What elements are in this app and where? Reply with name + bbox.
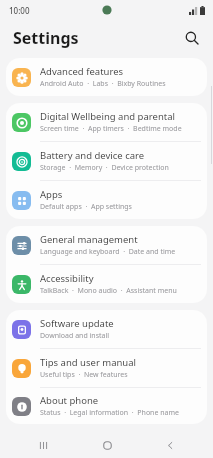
staticText: Useful tips · New features bbox=[40, 370, 128, 380]
staticText: General management bbox=[40, 233, 138, 246]
staticText: Settings bbox=[13, 27, 79, 49]
staticText: Advanced features bbox=[40, 65, 124, 78]
button[interactable]: Accessibility bbox=[6, 265, 207, 303]
staticText: Accessibility bbox=[40, 272, 94, 285]
staticText: About phone bbox=[40, 394, 99, 407]
button[interactable]: Tips and user manual bbox=[6, 349, 207, 387]
button[interactable]: Back bbox=[150, 432, 190, 458]
staticText: Battery and device care bbox=[40, 149, 145, 162]
button[interactable]: Home bbox=[87, 432, 127, 458]
button[interactable]: About phone bbox=[6, 388, 207, 424]
staticText: Screen time · App timers · Bedtime mode bbox=[40, 124, 182, 134]
button[interactable]: Battery and device care bbox=[6, 142, 207, 180]
staticText: Tips and user manual bbox=[40, 356, 137, 369]
staticText: Storage · Memory · Device protection bbox=[40, 163, 169, 173]
staticText: Android Auto · Labs · Bixby Routines bbox=[40, 79, 166, 89]
staticText: TalkBack · Mono audio · Assistant menu bbox=[40, 286, 177, 296]
staticText: 10:00 bbox=[9, 5, 30, 16]
staticText: Language and keyboard · Date and time bbox=[40, 247, 176, 257]
button[interactable]: Digital Wellbeing and parental controls bbox=[6, 103, 207, 141]
button[interactable]: Apps bbox=[6, 181, 207, 219]
staticText: Default apps · App settings bbox=[40, 202, 132, 212]
staticText: Apps bbox=[40, 188, 63, 201]
button[interactable]: Recents bbox=[23, 432, 63, 458]
button[interactable]: Search bbox=[179, 25, 205, 51]
button[interactable]: Software update bbox=[6, 310, 207, 348]
staticText: Digital Wellbeing and parental controls bbox=[40, 110, 199, 123]
button[interactable]: General management bbox=[6, 226, 207, 264]
staticText: Download and install bbox=[40, 331, 110, 341]
button[interactable]: Advanced features bbox=[6, 58, 207, 96]
staticText: Software update bbox=[40, 317, 114, 330]
staticText: Status · Legal information · Phone name bbox=[40, 408, 179, 418]
